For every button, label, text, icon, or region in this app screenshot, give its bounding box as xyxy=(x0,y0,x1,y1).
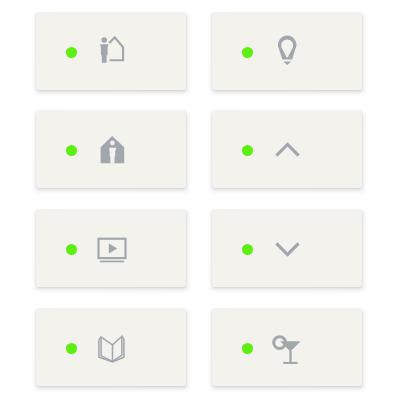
button[interactable]: Scroll up xyxy=(212,111,362,188)
button[interactable]: Scroll down xyxy=(212,210,362,287)
button[interactable]: Household xyxy=(36,13,186,90)
button[interactable]: Television xyxy=(36,210,186,287)
button[interactable]: Drinks xyxy=(212,309,362,386)
button[interactable]: Book xyxy=(36,309,186,386)
button[interactable]: Light xyxy=(212,13,362,90)
button[interactable]: Home xyxy=(36,111,186,188)
